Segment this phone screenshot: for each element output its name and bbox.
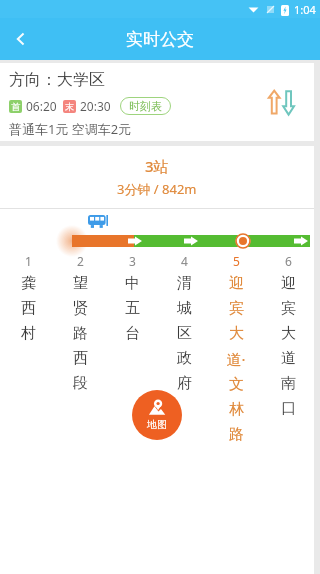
staticText: 06:20 — [26, 98, 57, 114]
staticText: 政 — [177, 349, 192, 368]
staticText: 3 — [129, 253, 136, 269]
staticText: 路 — [229, 425, 244, 444]
button[interactable]: Back — [0, 18, 42, 60]
staticText: 5 — [233, 253, 240, 269]
button[interactable]: 5 — [210, 253, 262, 450]
staticText: 贤 — [73, 299, 88, 318]
staticText: 大 — [281, 324, 296, 343]
staticText: 末 — [65, 101, 74, 112]
staticText: 3分钟 / 842m — [117, 180, 197, 198]
button[interactable]: 2 — [54, 253, 106, 399]
staticText: 林 — [229, 400, 244, 419]
button[interactable]: Switch direction — [262, 82, 302, 122]
staticText: 时刻表 — [129, 99, 162, 113]
button[interactable]: 时刻表 — [120, 97, 171, 115]
staticText: 区 — [177, 324, 192, 343]
staticText: 府 — [177, 374, 192, 393]
staticText: 路 — [73, 324, 88, 343]
staticText: 1 — [25, 253, 32, 269]
button[interactable]: Map — [132, 390, 182, 440]
staticText: 台 — [125, 324, 140, 343]
staticText: 渭 — [177, 274, 192, 293]
staticText: 地图 — [147, 418, 167, 431]
staticText: 6 — [285, 253, 292, 269]
button[interactable]: 3 — [106, 253, 158, 349]
staticText: 望 — [73, 274, 88, 293]
staticText: 迎 — [281, 274, 296, 293]
staticText: 南 — [281, 374, 296, 393]
staticText: 城 — [177, 299, 192, 318]
staticText: 宾 — [229, 299, 244, 318]
staticText: 龚 — [21, 274, 36, 293]
button[interactable]: 1 — [2, 253, 54, 349]
staticText: 五 — [125, 299, 140, 318]
staticText: 大 — [229, 324, 244, 343]
staticText: 1:04 — [294, 2, 316, 17]
staticText: 4 — [181, 253, 188, 269]
staticText: 村 — [21, 324, 36, 343]
staticText: 方向：大学区 — [9, 70, 105, 90]
staticText: 2 — [77, 253, 84, 269]
staticText: 文 — [229, 375, 244, 394]
staticText: 迎 — [229, 274, 244, 293]
staticText: 实时公交 — [126, 29, 194, 50]
staticText: 宾 — [281, 299, 296, 318]
staticText: 3站 — [145, 156, 169, 176]
staticText: 道· — [226, 349, 246, 369]
staticText: 20:30 — [80, 98, 111, 114]
button[interactable]: 6 — [262, 253, 314, 424]
staticText: 口 — [281, 399, 296, 418]
staticText: 首 — [11, 101, 20, 112]
staticText: 段 — [73, 374, 88, 393]
staticText: 西 — [21, 299, 36, 318]
button[interactable]: 4 — [158, 253, 210, 399]
staticText: 中 — [125, 274, 140, 293]
staticText: 道 — [281, 349, 296, 368]
staticText: 西 — [73, 349, 88, 368]
staticText: 普通车1元 空调车2元 — [9, 120, 132, 138]
